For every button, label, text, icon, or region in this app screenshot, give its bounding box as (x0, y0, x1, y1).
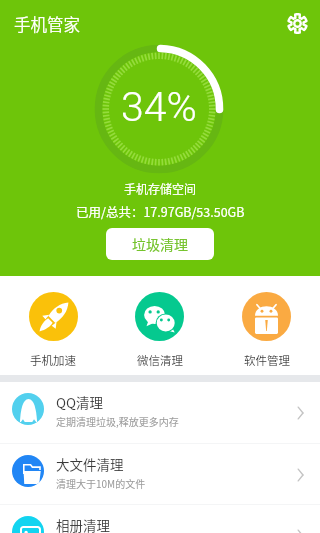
staticText: 手机加速 (30, 352, 76, 369)
staticText: 相册清理 (56, 515, 110, 533)
staticText: 大文件清理 (56, 454, 124, 474)
staticText: 手机存储空间 (124, 180, 197, 197)
button[interactable]: 相册清理 (0, 505, 320, 533)
button[interactable]: 大文件清理 (0, 444, 320, 505)
staticText: 34% (121, 83, 197, 131)
staticText: QQ清理 (56, 392, 104, 412)
button[interactable]: 软件管理 (213, 276, 320, 375)
staticText: 定期清理垃圾,释放更多内存 (56, 414, 179, 428)
button[interactable]: 手机加速 (0, 276, 106, 375)
staticText: 清理大于10M的文件 (56, 476, 146, 490)
button[interactable]: Settings (283, 9, 311, 37)
button[interactable]: QQ清理 (0, 382, 320, 443)
button[interactable]: 微信清理 (106, 276, 213, 375)
staticText: 软件管理 (244, 352, 290, 369)
staticText: 微信清理 (137, 352, 183, 369)
staticText: 手机管家 (14, 12, 80, 36)
staticText: 已用/总共：17.97GB/53.50GB (76, 202, 245, 220)
button[interactable]: 垃圾清理 (106, 228, 214, 260)
staticText: 垃圾清理 (132, 234, 188, 254)
